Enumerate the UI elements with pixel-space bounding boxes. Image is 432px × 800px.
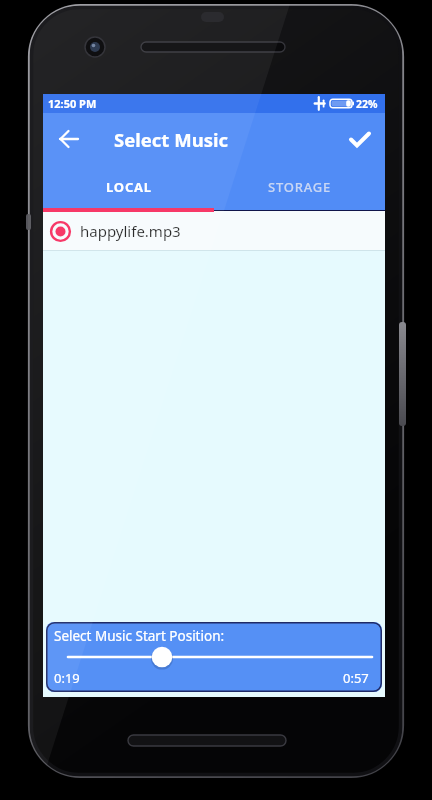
button[interactable]: happylife.mp3 xyxy=(43,212,385,250)
button[interactable] xyxy=(335,113,385,165)
button[interactable] xyxy=(43,113,95,165)
button[interactable]: LOCAL xyxy=(43,165,214,208)
button[interactable]: STORAGE xyxy=(214,165,385,208)
staticText: 0:57 xyxy=(343,669,369,687)
staticText: 22% xyxy=(356,97,378,111)
staticText: Select Music Start Position: xyxy=(54,627,225,645)
staticText: Select Music xyxy=(114,127,229,152)
button[interactable]: Select Music Start Position: xyxy=(46,622,382,692)
staticText: 0:19 xyxy=(54,669,80,687)
staticText: LOCAL xyxy=(106,178,152,196)
staticText: STORAGE xyxy=(268,178,332,196)
staticText: 12:50 PM xyxy=(48,96,97,111)
staticText: happylife.mp3 xyxy=(80,221,181,241)
